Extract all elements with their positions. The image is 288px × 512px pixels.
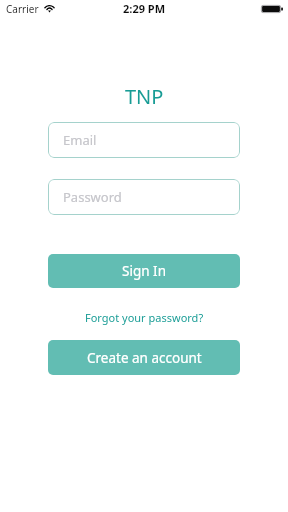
button[interactable]: Create an account	[48, 340, 240, 375]
staticText: TNP	[125, 83, 164, 105]
staticText: 2:29 PM	[123, 1, 166, 16]
staticText: Sign In	[122, 262, 166, 280]
other: Wi-Fi signal	[44, 5, 55, 13]
staticText: Email	[63, 131, 97, 149]
staticText: Carrier	[6, 2, 39, 16]
button[interactable]: Password	[48, 179, 240, 215]
button[interactable]: Forgot your password?	[72, 306, 216, 328]
staticText: Forgot your password?	[85, 310, 204, 325]
staticText: Password	[63, 188, 122, 206]
other: Battery full	[261, 5, 283, 13]
staticText: Create an account	[87, 349, 202, 367]
button[interactable]: Sign In	[48, 254, 240, 288]
button[interactable]: Email	[48, 122, 240, 158]
